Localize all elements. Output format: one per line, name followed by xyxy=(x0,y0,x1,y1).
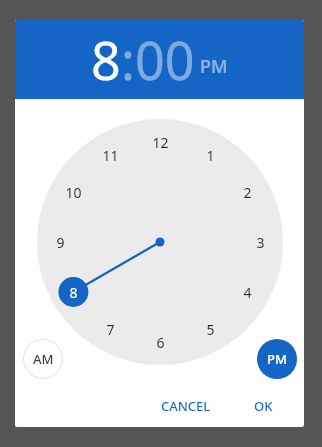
button[interactable]: 5 xyxy=(196,319,224,339)
button[interactable]: 9 xyxy=(46,232,74,252)
staticText: 9 xyxy=(56,233,65,252)
button[interactable]: 7 xyxy=(96,319,124,339)
button[interactable]: CANCEL xyxy=(148,391,224,421)
staticText: 1 xyxy=(206,146,215,165)
staticText: 2 xyxy=(243,183,252,202)
staticText: 6 xyxy=(156,333,165,352)
button[interactable]: 3 xyxy=(246,232,274,252)
staticText: 00 xyxy=(135,24,195,95)
staticText: 8 xyxy=(69,283,78,302)
staticText: 7 xyxy=(106,320,115,339)
button[interactable]: 6 xyxy=(146,332,174,352)
button[interactable]: PM xyxy=(257,339,297,379)
staticText: 4 xyxy=(243,283,252,302)
staticText: 10 xyxy=(65,183,82,202)
button[interactable]: 1 xyxy=(196,145,224,165)
button[interactable]: 10 xyxy=(59,182,87,202)
button[interactable]: 2 xyxy=(233,182,261,202)
staticText: 11 xyxy=(102,146,119,165)
staticText: PM xyxy=(200,54,228,79)
staticText: 3 xyxy=(256,233,265,252)
button[interactable]: 00 xyxy=(135,24,195,95)
button[interactable]: 8 xyxy=(91,24,121,95)
button[interactable]: 11 xyxy=(96,145,124,165)
staticText: : xyxy=(121,24,135,95)
staticText: CANCEL xyxy=(161,397,211,415)
staticText: OK xyxy=(254,397,273,415)
staticText: AM xyxy=(33,350,54,368)
button[interactable]: 4 xyxy=(233,282,261,302)
staticText: 5 xyxy=(206,320,215,339)
button[interactable]: OK xyxy=(238,391,288,421)
button[interactable]: 8 xyxy=(59,282,87,302)
button[interactable]: PM xyxy=(200,54,228,79)
button[interactable]: 12 xyxy=(146,132,174,152)
staticText: 12 xyxy=(152,133,169,152)
staticText: 8 xyxy=(91,24,121,95)
staticText: PM xyxy=(267,350,287,368)
other: Clock face, 8 o'clock xyxy=(15,20,304,427)
button[interactable]: AM xyxy=(23,339,63,379)
